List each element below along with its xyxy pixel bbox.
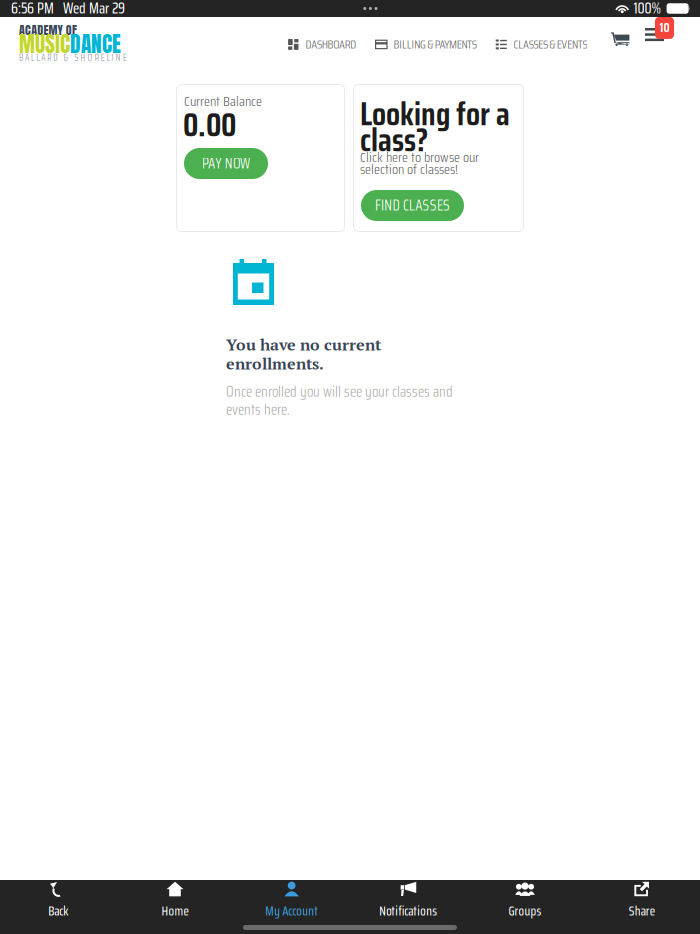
staticText: Notifications <box>379 901 437 921</box>
button[interactable]: Cart <box>606 27 635 51</box>
staticText: Current Balance <box>184 90 262 112</box>
staticText: PAY NOW <box>202 152 250 175</box>
staticText: 100% <box>634 0 662 20</box>
staticText: 10 <box>659 17 669 37</box>
staticText: BALLARD & SHORELINE <box>19 51 127 65</box>
staticText: 6:56 PM <box>11 0 54 20</box>
button[interactable]: Menu <box>640 17 680 57</box>
button[interactable]: Back <box>0 875 117 927</box>
button[interactable]: CLASSES & EVENTS <box>495 26 587 63</box>
staticText: BILLING & PAYMENTS <box>394 35 477 54</box>
staticText: Back <box>48 901 68 921</box>
staticText: ACADEMY OF <box>19 21 77 39</box>
staticText: FIND CLASSES <box>375 194 450 217</box>
staticText: Click here to browse our <box>360 146 479 168</box>
staticText: Share <box>629 901 655 921</box>
button[interactable]: DASHBOARD <box>287 26 356 63</box>
staticText: Wed Mar 29 <box>63 0 125 20</box>
button[interactable]: My Account <box>233 875 350 927</box>
staticText: Groups <box>508 901 541 921</box>
staticText: You have no current <box>226 334 381 355</box>
staticText: class? <box>360 115 428 165</box>
button[interactable]: FIND CLASSES <box>361 190 464 221</box>
staticText: enrollments. <box>226 353 324 374</box>
staticText: DANCE <box>70 28 121 60</box>
button[interactable]: PAY NOW <box>184 148 268 179</box>
staticText: Once enrolled you will see your classes … <box>226 380 453 403</box>
staticText: DASHBOARD <box>306 35 356 54</box>
staticText: My Account <box>265 901 318 921</box>
staticText: Looking for a <box>360 89 510 139</box>
button[interactable]: BILLING & PAYMENTS <box>375 26 477 63</box>
staticText: events here. <box>226 398 290 421</box>
button[interactable]: Groups <box>467 875 583 927</box>
staticText: Home <box>161 901 188 921</box>
staticText: MUSIC <box>19 28 70 60</box>
button[interactable]: Home <box>117 875 233 927</box>
button[interactable]: Share <box>583 875 700 927</box>
button[interactable]: Notifications <box>350 875 467 927</box>
staticText: CLASSES & EVENTS <box>514 35 587 54</box>
staticText: selection of classes! <box>360 158 458 180</box>
staticText: 0.00 <box>183 100 236 150</box>
